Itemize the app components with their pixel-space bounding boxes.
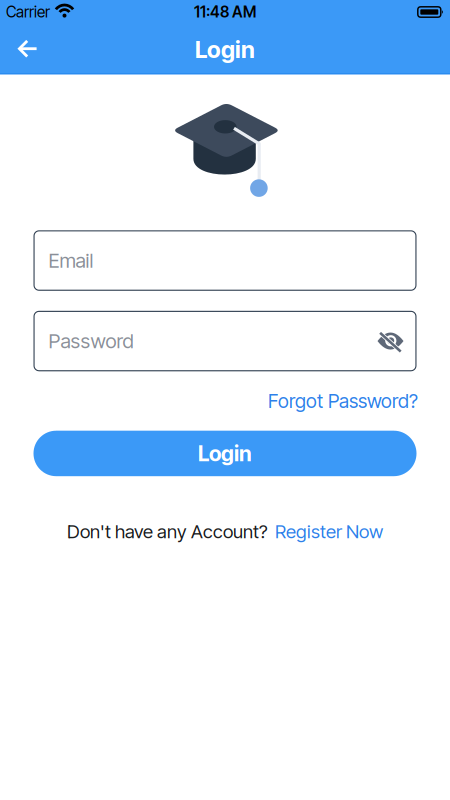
staticText: Password (48, 329, 133, 353)
button[interactable] (377, 330, 416, 352)
button[interactable]: Register Now (275, 520, 383, 543)
textField[interactable]: Email (48, 248, 416, 273)
staticText: Carrier (6, 3, 50, 21)
staticText: Email (48, 248, 93, 273)
staticText: Login (198, 440, 252, 466)
staticText: 11:48 AM (194, 3, 256, 21)
button[interactable] (0, 38, 38, 58)
button[interactable]: Forgot Password? (268, 389, 418, 413)
staticText: Register Now (275, 520, 383, 543)
staticText: Email (48, 248, 93, 273)
staticText: Forgot Password? (268, 389, 418, 413)
button[interactable]: Login (33, 431, 416, 476)
secureTextField[interactable]: Password (48, 329, 416, 353)
staticText: Don't have any Account? (67, 520, 268, 543)
staticText: Password (48, 329, 133, 353)
staticText: Login (195, 35, 255, 64)
